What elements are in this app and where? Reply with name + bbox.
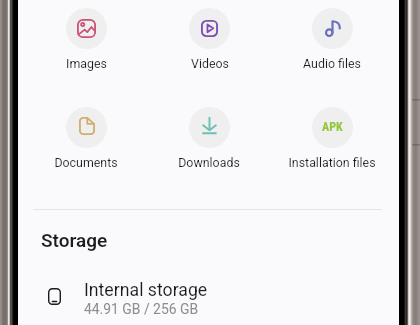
staticText: Internal storage xyxy=(84,280,208,301)
button[interactable]: Documents xyxy=(23,107,149,182)
staticText: 44.91 GB / 256 GB xyxy=(84,301,199,317)
staticText: Storage xyxy=(41,229,108,251)
button[interactable]: Videos xyxy=(146,8,272,83)
button[interactable]: Images xyxy=(23,8,149,83)
button[interactable]: Internal storage xyxy=(18,268,399,325)
button[interactable]: Audio files xyxy=(269,8,395,83)
staticText: Videos xyxy=(191,56,229,71)
button[interactable]: Downloads xyxy=(146,107,272,182)
staticText: Audio files xyxy=(303,56,361,71)
staticText: Images xyxy=(66,56,107,71)
button[interactable]: APK xyxy=(269,107,395,182)
staticText: APK xyxy=(322,120,343,134)
staticText: Downloads xyxy=(178,155,240,170)
staticText: Documents xyxy=(54,155,118,170)
staticText: Installation files xyxy=(288,155,376,170)
